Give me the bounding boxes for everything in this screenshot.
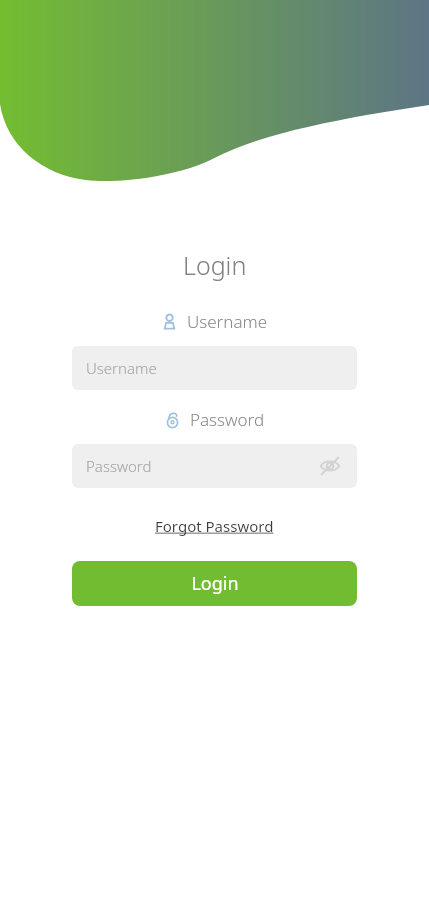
button[interactable]: Login xyxy=(72,561,357,606)
staticText: Password xyxy=(190,408,265,431)
button[interactable]: Username xyxy=(72,346,357,390)
button[interactable]: Show password xyxy=(317,453,343,479)
staticText: Username xyxy=(187,310,268,333)
staticText: Forgot Password xyxy=(155,516,274,536)
staticText: Password xyxy=(86,456,152,476)
staticText: Login xyxy=(183,248,247,282)
staticText: Login xyxy=(191,571,239,596)
button[interactable]: Forgot Password xyxy=(147,512,282,540)
button[interactable]: Password xyxy=(72,444,357,488)
staticText: Username xyxy=(86,358,157,378)
